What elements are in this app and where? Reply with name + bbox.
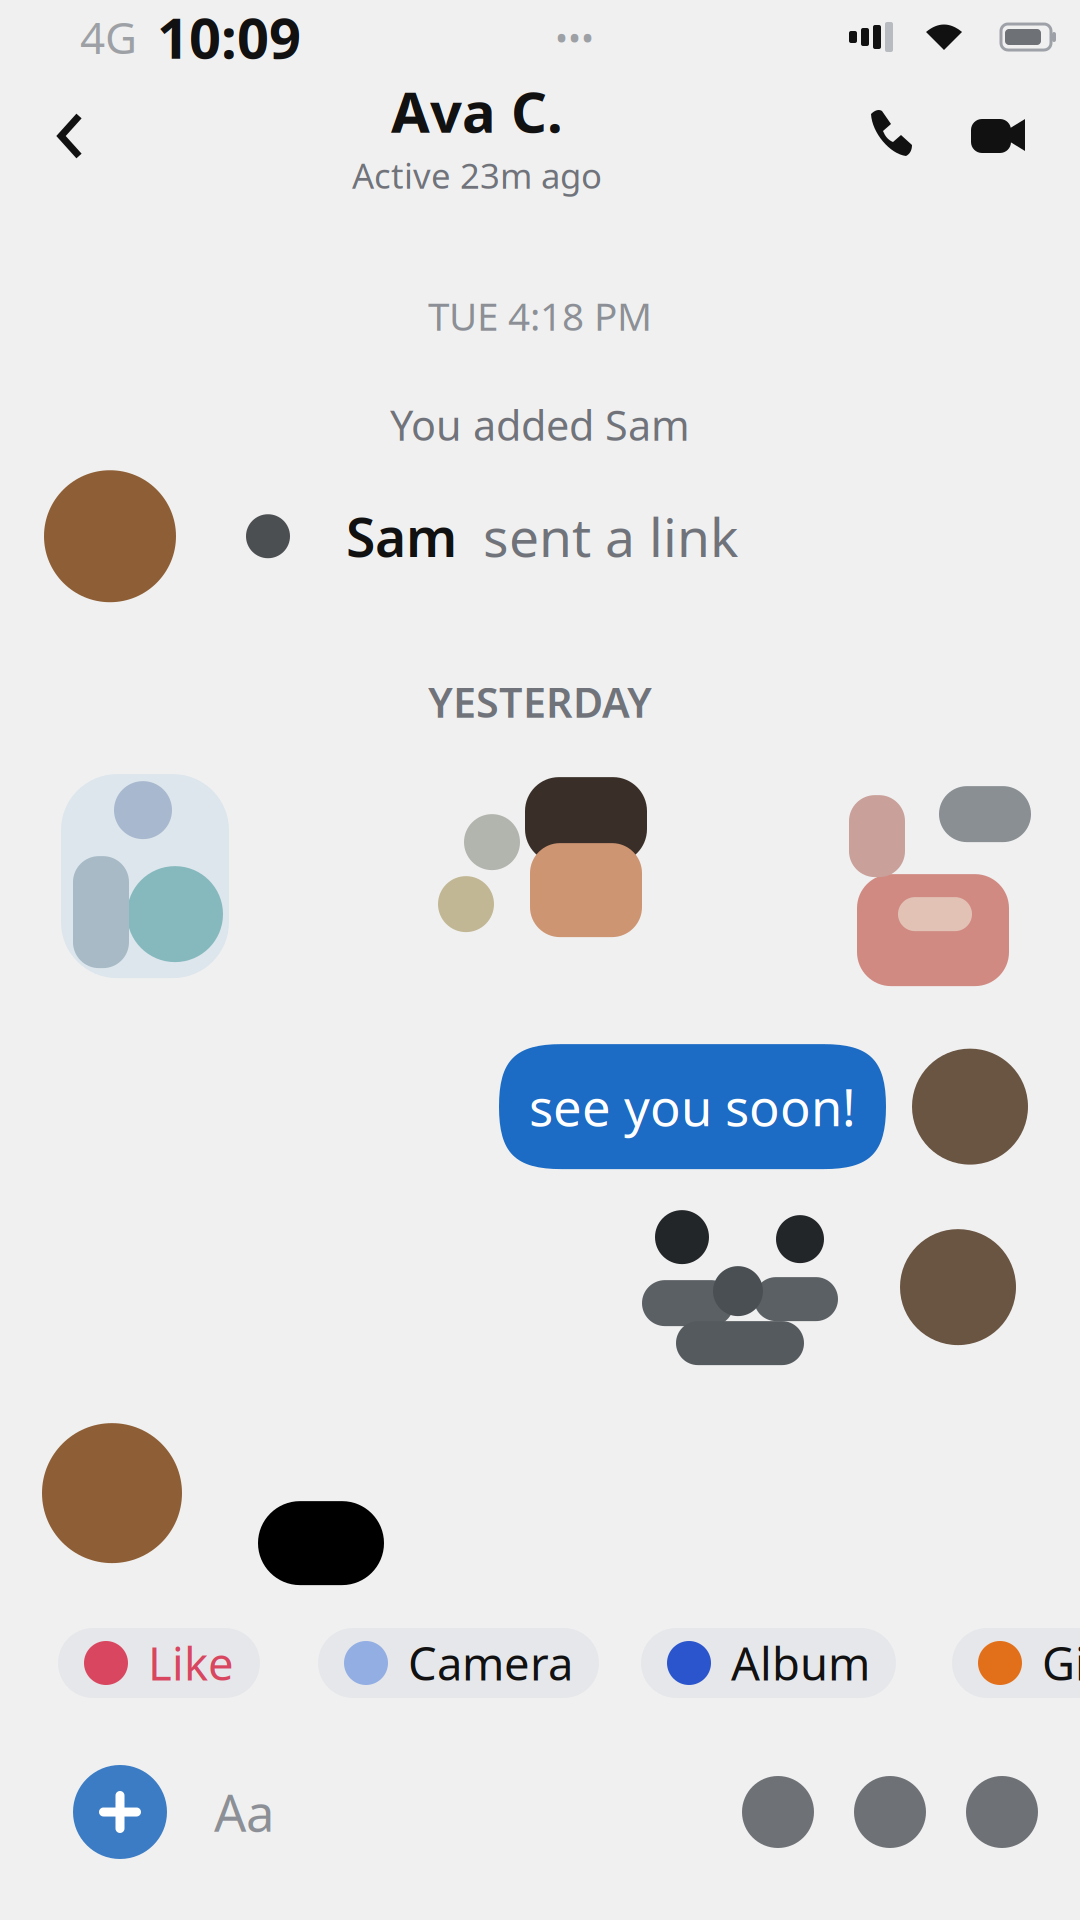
staticText: You added Sam [390, 397, 690, 452]
staticText: Album [731, 1633, 870, 1693]
button[interactable]: Audio call [834, 74, 946, 198]
button[interactable]: Gif [952, 1628, 1080, 1698]
staticText: TUE 4:18 PM [428, 290, 652, 341]
staticText: Aa [214, 1778, 274, 1846]
button[interactable]: More options [70, 1762, 170, 1862]
button[interactable]: Like [58, 1628, 260, 1698]
staticText: sent a link [483, 501, 738, 572]
staticText: 10:09 [157, 0, 301, 74]
staticText: Active 23m ago [352, 152, 602, 198]
staticText: YESTERDAY [428, 674, 652, 729]
staticText: Gif [1042, 1633, 1080, 1693]
button[interactable]: Album [641, 1628, 896, 1698]
staticText: Like [148, 1633, 234, 1693]
staticText: Ava C. [391, 74, 563, 148]
button[interactable]: GIFs [834, 1756, 946, 1868]
button[interactable]: Like [946, 1756, 1058, 1868]
staticText: ••• [555, 14, 594, 60]
staticText: 4G [80, 8, 137, 66]
staticText: Camera [408, 1633, 573, 1693]
button[interactable]: Camera [318, 1628, 599, 1698]
button[interactable]: Video call [946, 74, 1050, 198]
staticText: see you soon! [529, 1073, 856, 1140]
button[interactable]: Back [20, 74, 120, 198]
button[interactable]: Stickers [722, 1756, 834, 1868]
staticText: Sam [346, 501, 457, 572]
